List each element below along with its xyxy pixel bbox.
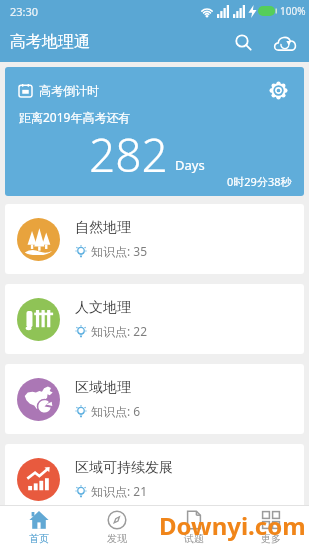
button[interactable] bbox=[225, 24, 261, 60]
staticText: Days bbox=[175, 156, 205, 174]
staticText: 距离2019年高考还有 bbox=[19, 109, 131, 125]
staticText: 区域地理 bbox=[75, 379, 131, 397]
staticText: 0时29分38秒 bbox=[227, 174, 292, 189]
staticText: 高考地理通 bbox=[10, 32, 90, 52]
button[interactable]: 人文地理 bbox=[5, 284, 304, 354]
button[interactable]: 首页 bbox=[0, 506, 78, 550]
button[interactable]: 试题 bbox=[155, 506, 232, 550]
button[interactable] bbox=[267, 24, 303, 60]
button[interactable]: 自然地理 bbox=[5, 204, 304, 274]
button[interactable]: 更多 bbox=[232, 506, 309, 550]
staticText: 知识点: 35 bbox=[91, 243, 148, 259]
staticText: Downyi.com bbox=[159, 509, 306, 542]
staticText: 区域可持续发展 bbox=[75, 459, 173, 477]
button[interactable]: 高考倒计时 bbox=[5, 67, 304, 196]
staticText: 高考倒计时 bbox=[39, 83, 99, 98]
staticText: 人文地理 bbox=[75, 299, 131, 317]
button[interactable]: 区域可持续发展 bbox=[5, 444, 304, 505]
staticText: 试题 bbox=[184, 532, 204, 545]
staticText: 自然地理 bbox=[75, 219, 131, 237]
staticText: 100% bbox=[280, 4, 306, 18]
staticText: 282 bbox=[89, 123, 168, 186]
staticText: 23:30 bbox=[10, 4, 39, 19]
staticText: 知识点: 21 bbox=[91, 483, 148, 499]
button[interactable]: 区域地理 bbox=[5, 364, 304, 434]
staticText: 首页 bbox=[29, 532, 49, 545]
staticText: 更多 bbox=[261, 532, 281, 545]
button[interactable]: 发现 bbox=[78, 506, 155, 550]
staticText: 发现 bbox=[107, 532, 127, 545]
button[interactable] bbox=[266, 78, 290, 102]
staticText: 知识点: 6 bbox=[91, 403, 141, 419]
staticText: 知识点: 22 bbox=[91, 323, 148, 339]
